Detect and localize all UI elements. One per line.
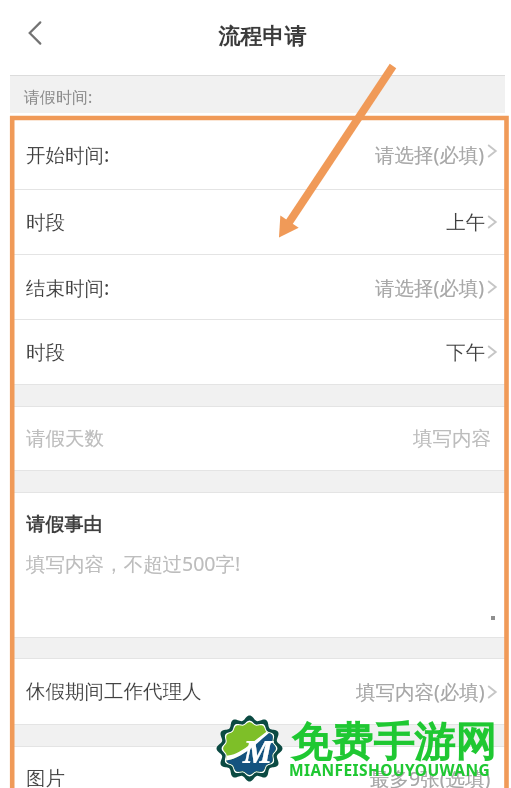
button[interactable]: Back bbox=[17, 15, 53, 51]
staticText: 结束时间: bbox=[26, 274, 110, 301]
button[interactable]: 开始时间: bbox=[10, 113, 505, 189]
staticText: 图片 bbox=[26, 766, 65, 788]
staticText: 免费手游网 bbox=[291, 717, 496, 769]
button[interactable]: 休假期间工作代理人 bbox=[10, 659, 505, 724]
staticText: 休假期间工作代理人 bbox=[26, 679, 202, 704]
staticText: 请选择(必填) bbox=[375, 274, 485, 301]
staticText: 填写内容 bbox=[413, 426, 491, 451]
staticText: MIANFEISHOUYOUWANG bbox=[289, 759, 491, 780]
staticText: 开始时间: bbox=[26, 141, 110, 168]
button[interactable]: 结束时间: bbox=[10, 255, 505, 319]
staticText: 流程申请 bbox=[218, 23, 306, 51]
button[interactable]: 图片 bbox=[10, 747, 505, 788]
button[interactable]: 时段 bbox=[10, 320, 505, 384]
staticText: 填写内容，不超过500字! bbox=[26, 550, 241, 577]
button[interactable]: 请假天数 bbox=[10, 407, 505, 470]
button[interactable]: 时段 bbox=[10, 190, 505, 254]
staticText: 最多9张(选填) bbox=[370, 765, 491, 788]
staticText: 请选择(必填) bbox=[375, 141, 485, 168]
staticText: 请假事由 bbox=[26, 513, 102, 537]
staticText: 上午 bbox=[446, 210, 485, 235]
staticText: M bbox=[243, 731, 272, 772]
staticText: 下午 bbox=[446, 340, 485, 365]
staticText: 时段 bbox=[26, 340, 65, 365]
staticText: 填写内容(必填) bbox=[356, 678, 485, 705]
staticText: 请假时间: bbox=[24, 86, 93, 108]
button[interactable]: 请假事由 bbox=[10, 493, 505, 637]
staticText: 时段 bbox=[26, 210, 65, 235]
staticText: 请假天数 bbox=[26, 426, 104, 451]
